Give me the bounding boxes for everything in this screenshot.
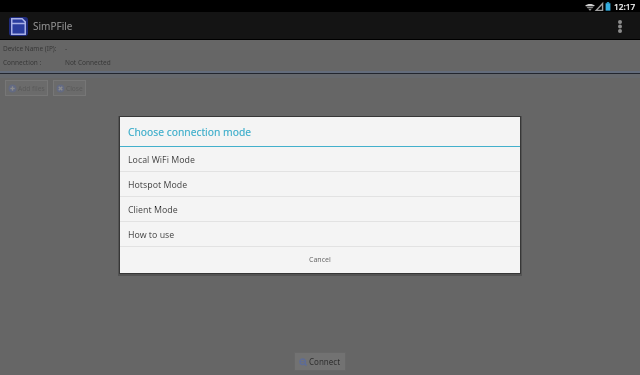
staticText: Cancel: [309, 255, 331, 265]
staticText: 12:17: [614, 1, 636, 12]
button[interactable]: Hotspot Mode: [120, 172, 520, 196]
button[interactable]: How to use: [120, 222, 520, 246]
staticText: Connection :: [3, 58, 65, 67]
staticText: How to use: [128, 229, 175, 241]
button[interactable]: Connect: [294, 352, 346, 371]
button[interactable]: Close: [53, 80, 86, 96]
staticText: -: [65, 44, 68, 53]
staticText: Add files: [18, 84, 45, 93]
staticText: SimPFile: [33, 19, 73, 33]
staticText: Client Mode: [128, 204, 178, 216]
button[interactable]: Local WiFi Mode: [120, 147, 520, 171]
button[interactable]: Client Mode: [120, 197, 520, 221]
staticText: Choose connection mode: [128, 125, 252, 139]
staticText: Close: [66, 84, 83, 93]
button[interactable]: Add files: [5, 80, 48, 96]
staticText: Device Name (IP):: [3, 44, 65, 53]
button[interactable]: More options: [614, 12, 626, 40]
staticText: Local WiFi Mode: [128, 154, 195, 166]
staticText: Not Connected: [65, 58, 111, 67]
staticText: Hotspot Mode: [128, 179, 188, 191]
button[interactable]: Cancel: [120, 247, 520, 272]
staticText: Connect: [309, 356, 341, 367]
